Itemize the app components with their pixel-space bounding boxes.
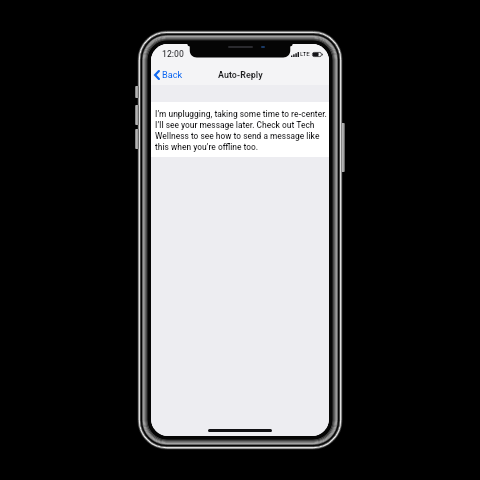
staticText: 12:00 <box>162 49 184 59</box>
staticText: I’m unplugging, taking some time to re-c… <box>155 108 329 152</box>
staticText: Back <box>162 69 183 80</box>
button[interactable]: I’m unplugging, taking some time to re-c… <box>151 102 329 157</box>
staticText: Auto-Reply <box>218 70 263 80</box>
staticText: LTE <box>300 50 310 57</box>
button[interactable]: Back <box>151 68 190 82</box>
